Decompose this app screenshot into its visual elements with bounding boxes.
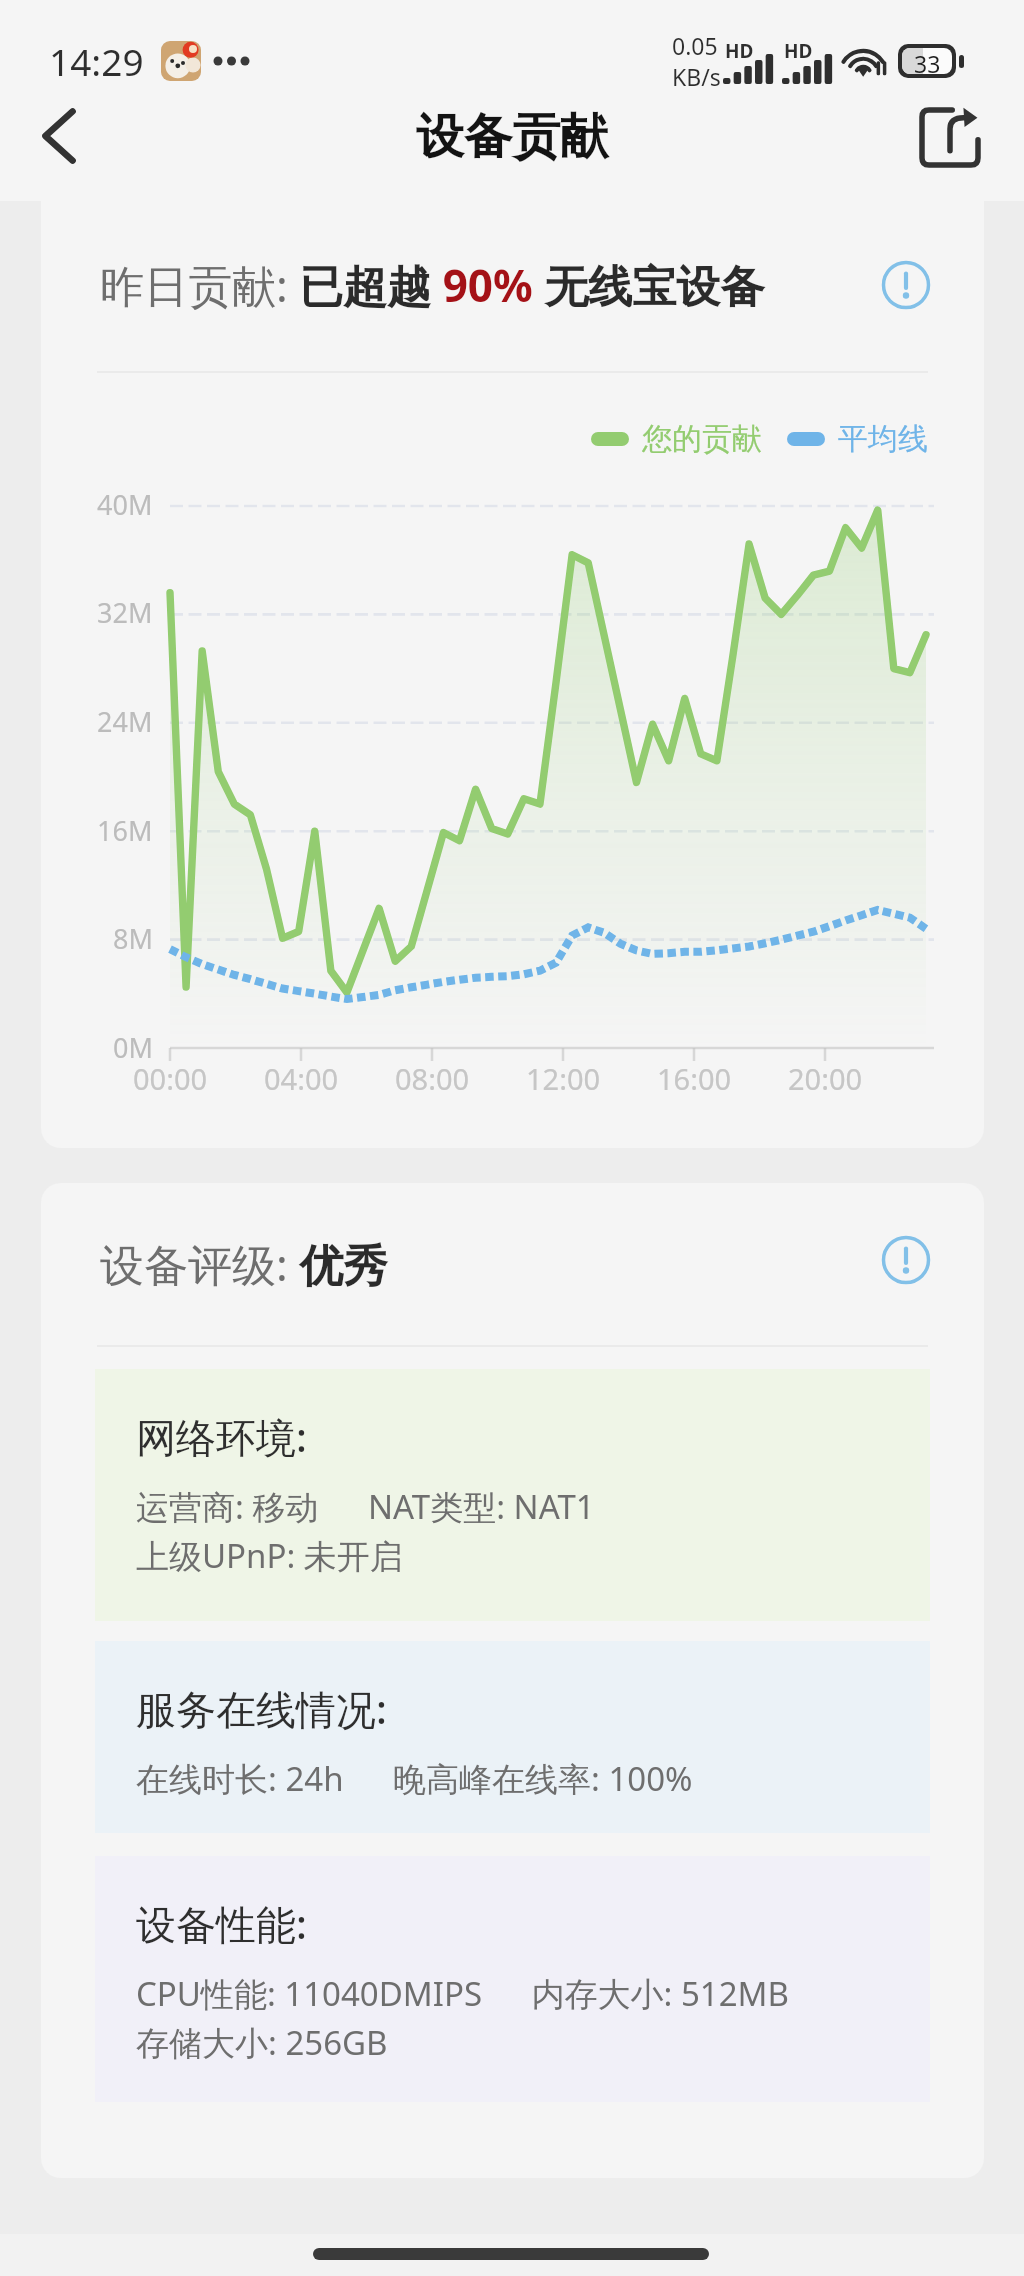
staticText: 8M <box>113 920 153 957</box>
button[interactable]: Share <box>906 93 994 181</box>
staticText: 20:00 <box>788 1059 863 1098</box>
staticText: 16:00 <box>657 1059 732 1098</box>
staticText: 12:00 <box>526 1059 601 1098</box>
button[interactable]: Back <box>15 92 103 180</box>
staticText: 设备性能: <box>136 1896 307 1951</box>
staticText: 0.05 <box>672 30 718 61</box>
staticText: 设备贡献 <box>416 107 608 167</box>
staticText: 运营商: 移动 NAT类型: NAT1 <box>136 1484 595 1529</box>
button[interactable]: Info <box>881 260 931 310</box>
staticText: 服务在线情况: <box>136 1681 387 1736</box>
staticText: 24M <box>97 703 153 740</box>
staticText: 存储大小: 256GB <box>136 2020 388 2065</box>
staticText: 在线时长: 24h 晚高峰在线率: 100% <box>136 1756 693 1801</box>
staticText: 04:00 <box>264 1059 339 1098</box>
staticText: HD <box>784 38 813 64</box>
staticText: 平均线 <box>838 420 928 458</box>
staticText: 上级UPnP: 未开启 <box>136 1533 403 1578</box>
staticText: HD <box>725 38 754 64</box>
staticText: 您的贡献 <box>642 420 762 458</box>
staticText: 00:00 <box>133 1059 208 1098</box>
staticText: 32M <box>97 594 153 631</box>
staticText: 08:00 <box>395 1059 470 1098</box>
staticText: 16M <box>97 812 153 849</box>
staticText: CPU性能: 11040DMIPS 内存大小: 512MB <box>136 1971 789 2016</box>
staticText: 40M <box>97 486 153 523</box>
staticText: 网络环境: <box>136 1409 307 1464</box>
staticText: 设备评级: 优秀 <box>100 1234 388 1294</box>
staticText: 0M <box>113 1029 153 1066</box>
staticText: 14:29 <box>49 36 144 86</box>
staticText: 33 <box>914 48 941 74</box>
button[interactable]: Info <box>881 1235 931 1285</box>
staticText: 昨日贡献: 已超越 90% 无线宝设备 <box>100 255 765 315</box>
staticText: KB/s <box>672 61 721 92</box>
